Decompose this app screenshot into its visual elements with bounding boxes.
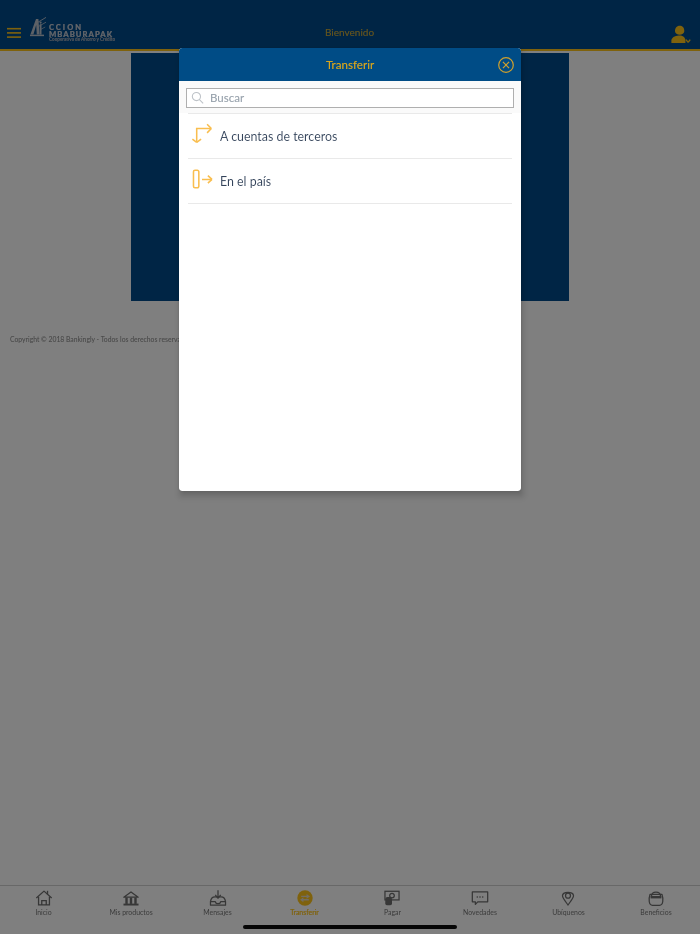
button[interactable]: Mensajes (174, 886, 261, 916)
button[interactable]: Menu (1, 19, 27, 45)
staticText: Mis productos (109, 908, 153, 916)
button[interactable]: Ubíquenos (524, 886, 612, 916)
button[interactable]: Mis productos (87, 886, 174, 916)
button[interactable]: Beneficios (612, 886, 700, 916)
staticText: Beneficios (640, 908, 672, 916)
button[interactable]: A cuentas de terceros (179, 114, 521, 158)
staticText: Mensajes (203, 908, 232, 916)
button[interactable]: Novedades (436, 886, 524, 916)
staticText: Bienvenido (325, 26, 375, 38)
button[interactable]: En el país (179, 159, 521, 203)
button[interactable]: Pagar (348, 886, 436, 916)
button[interactable]: Perfil (671, 24, 690, 43)
staticText: Transferir (326, 58, 375, 72)
staticText: Buscar (210, 91, 245, 105)
button[interactable]: Cerrar (498, 57, 514, 73)
staticText: En el país (220, 174, 272, 189)
button[interactable]: Transferir (261, 886, 348, 916)
staticText: Cooperativa de Ahorro y Crédito (49, 36, 116, 42)
button[interactable]: Inicio (0, 886, 87, 916)
staticText: Novedades (463, 908, 497, 916)
staticText: Copyright © 2018 Bankingly - Todos los d… (10, 335, 192, 343)
staticText: Transferir (290, 908, 319, 916)
staticText: MBABURAPAK (49, 29, 114, 38)
staticText: Pagar (384, 908, 401, 916)
button[interactable]: Buscar (186, 88, 514, 108)
staticText: CCION (49, 23, 84, 32)
staticText: Inicio (35, 908, 52, 916)
staticText: Ubíquenos (552, 908, 585, 916)
staticText: A cuentas de terceros (220, 129, 338, 144)
